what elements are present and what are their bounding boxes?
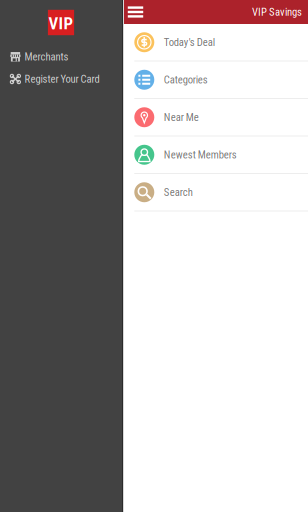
button[interactable]: Search <box>124 174 308 211</box>
button[interactable]: Menu <box>124 0 146 24</box>
button[interactable]: Near Me <box>124 99 308 136</box>
staticText: Merchants <box>25 50 69 63</box>
button[interactable]: Newest Members <box>124 136 308 174</box>
staticText: VIP Savings <box>252 6 302 18</box>
button[interactable]: Register Your Card <box>0 68 122 90</box>
button[interactable]: Categories <box>124 61 308 99</box>
staticText: Today's Deal <box>164 36 215 48</box>
staticText: Register Your Card <box>25 73 100 85</box>
staticText: Newest Members <box>164 148 237 161</box>
staticText: VIP <box>48 14 73 33</box>
staticText: Categories <box>164 73 208 86</box>
button[interactable]: Today's Deal <box>124 24 308 61</box>
staticText: Search <box>164 186 193 198</box>
button[interactable]: Merchants <box>0 46 122 68</box>
staticText: Near Me <box>164 111 199 123</box>
